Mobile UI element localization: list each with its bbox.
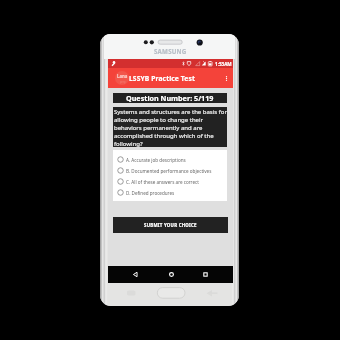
button[interactable]: SUBMIT YOUR CHOICE	[113, 217, 228, 233]
staticText: C. All of these answers are correct	[126, 179, 199, 185]
button[interactable]: B. Documented performance objectives	[113, 165, 227, 176]
staticText: A. Accurate job descriptions	[126, 157, 186, 163]
button[interactable]: D. Defined procedures	[113, 187, 227, 198]
staticText: SUBMIT YOUR CHOICE	[144, 222, 197, 228]
staticText: 1:53AM	[215, 61, 232, 67]
staticText: LSSYB Practice Test	[129, 74, 195, 83]
button[interactable]: LSSYB Practice Test	[108, 68, 233, 88]
staticText: Systems and structures are the basis for…	[114, 108, 227, 148]
staticText: Lana	[117, 73, 128, 79]
staticText: B. Documented performance objectives	[126, 168, 212, 174]
button[interactable]: A. Accurate job descriptions	[113, 154, 227, 165]
staticText: SAMSUNG	[154, 47, 187, 55]
button[interactable]: C. All of these answers are correct	[113, 176, 227, 187]
staticText: D. Defined procedures	[126, 190, 175, 196]
staticText: Question Number: 5/119	[126, 93, 214, 103]
button[interactable]: Back	[129, 266, 141, 283]
button[interactable]: Home	[165, 266, 177, 283]
button[interactable]: Recent apps	[199, 266, 211, 283]
staticText: prep	[120, 80, 126, 84]
button[interactable]: More options	[222, 68, 231, 88]
